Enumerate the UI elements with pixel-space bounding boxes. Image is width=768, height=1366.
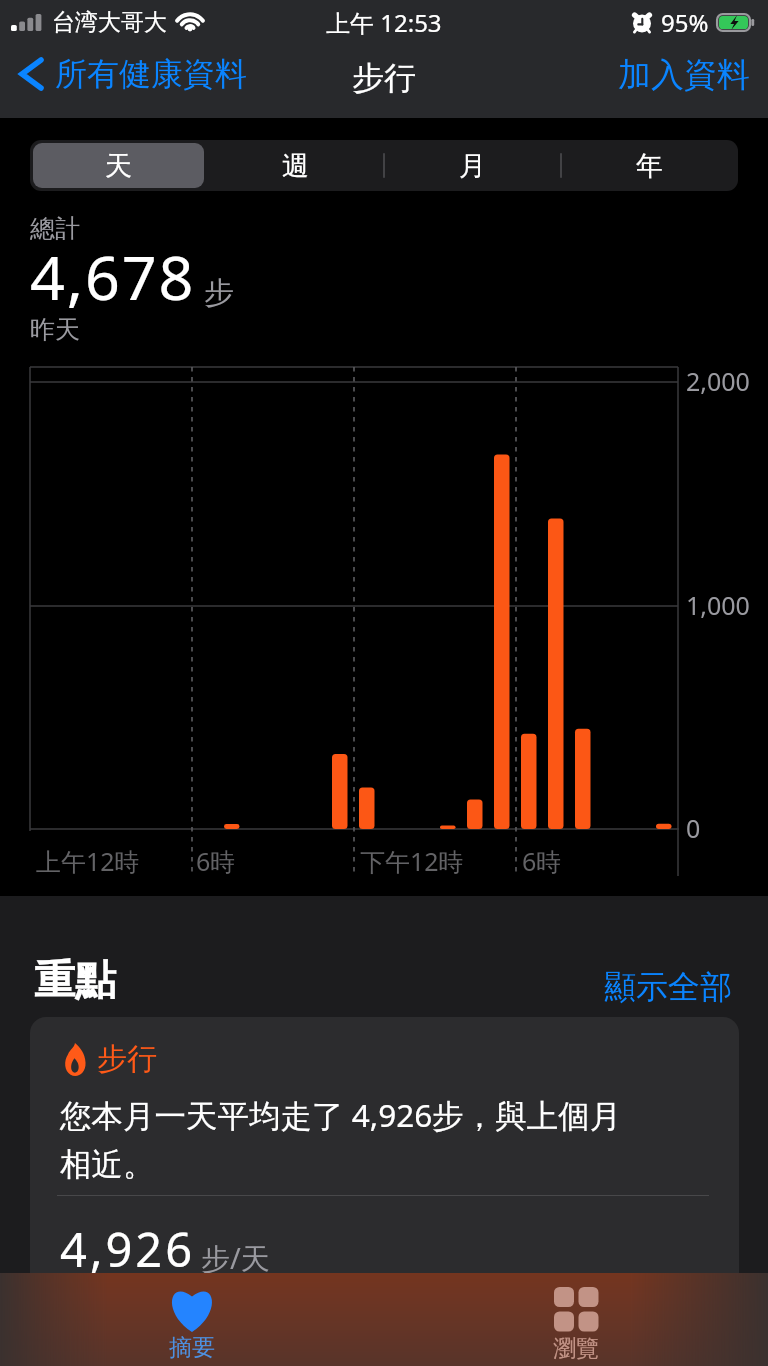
staticText: 步/天 xyxy=(201,1238,270,1278)
button[interactable]: 摘要 xyxy=(96,1273,288,1366)
button[interactable]: 步行 xyxy=(30,1017,739,1366)
staticText: 總計 xyxy=(30,213,80,244)
staticText: 月 xyxy=(459,149,486,183)
staticText: 您本月一天平均走了 4,926步，與上個月相近。 xyxy=(60,1093,648,1184)
staticText: 0 xyxy=(686,811,701,845)
button[interactable]: 顯示全部 xyxy=(600,963,736,1011)
staticText: 台湾大哥大 xyxy=(52,8,167,37)
staticText: 瀏覽 xyxy=(553,1334,599,1363)
staticText: 週 xyxy=(282,149,309,183)
staticText: 顯示全部 xyxy=(604,967,732,1007)
staticText: 步行 xyxy=(97,1040,157,1078)
staticText: 步 xyxy=(204,274,234,312)
button[interactable]: 瀏覽 xyxy=(480,1273,672,1366)
staticText: 天 xyxy=(105,149,132,183)
staticText: 1,000 xyxy=(686,588,750,622)
staticText: 4,926 xyxy=(60,1217,196,1281)
staticText: 年 xyxy=(636,149,663,183)
button[interactable]: 所有健康資料 xyxy=(14,48,251,100)
staticText: 4,678 xyxy=(30,235,196,318)
button[interactable]: 天 xyxy=(33,143,204,188)
staticText: 重點 xyxy=(34,955,116,1007)
staticText: 6時 xyxy=(522,844,562,878)
button[interactable]: 週 xyxy=(210,143,381,188)
staticText: 上午 12:53 xyxy=(326,6,442,39)
staticText: 6時 xyxy=(196,844,236,878)
staticText: 95% xyxy=(661,6,709,39)
staticText: 下午12時 xyxy=(360,844,464,878)
staticText: 所有健康資料 xyxy=(55,54,247,94)
staticText: 加入資料 xyxy=(618,54,750,96)
button[interactable]: 加入資料 xyxy=(614,48,754,102)
staticText: 2,000 xyxy=(686,364,750,398)
button[interactable]: 月 xyxy=(387,143,558,188)
staticText: 上午12時 xyxy=(36,844,140,878)
button[interactable]: 年 xyxy=(564,143,735,188)
staticText: 摘要 xyxy=(169,1333,215,1362)
staticText: 昨天 xyxy=(30,314,80,345)
staticText: 步行 xyxy=(352,58,416,98)
